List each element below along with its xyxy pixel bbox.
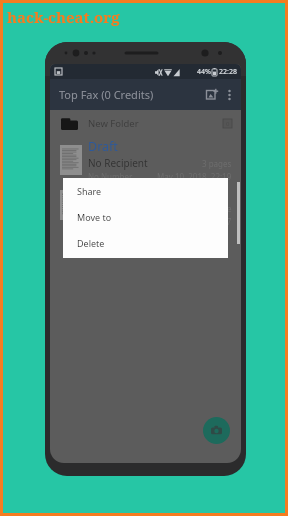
staticText: Draft — [88, 183, 118, 200]
staticText: +1 314888888 — [88, 216, 157, 227]
staticText: 44% — [197, 67, 211, 77]
staticText: Draft — [88, 138, 118, 155]
staticText: 1 page — [206, 203, 232, 214]
staticText: May 10, 2018, 22:19 — [157, 171, 232, 182]
staticText: New Folder — [88, 117, 139, 130]
button[interactable]: More options — [223, 85, 236, 105]
staticText: Share — [77, 185, 102, 197]
staticText: 22:28 — [219, 67, 237, 77]
staticText: No Recipient — [88, 156, 202, 170]
staticText: hack-cheat.org — [7, 7, 120, 27]
staticText: Top Fax (0 Credits) — [59, 87, 154, 102]
button[interactable]: Share — [63, 178, 228, 204]
button[interactable]: Add image — [201, 84, 223, 106]
button[interactable]: Move to — [63, 204, 228, 230]
staticText: May 10, 2018, 22:17 — [157, 216, 232, 227]
staticText: No Number — [88, 171, 157, 182]
staticText: 3 pages — [202, 158, 232, 169]
staticText: Move to — [77, 211, 112, 223]
staticText: Delete — [77, 237, 105, 249]
button[interactable]: New Folder — [50, 110, 241, 137]
button[interactable]: Draft — [50, 137, 241, 182]
button[interactable]: Delete — [63, 230, 228, 256]
button[interactable]: New fax from camera — [203, 417, 230, 444]
button[interactable]: Draft — [50, 182, 241, 227]
